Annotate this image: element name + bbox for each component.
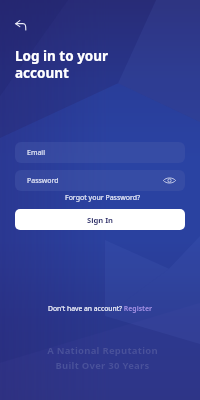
staticText: Sign In [87,215,114,225]
button[interactable]: Don't have an account? Register [44,303,157,314]
staticText: Password [27,176,59,186]
button[interactable]: Sign In [15,209,185,230]
staticText: Email [27,148,45,158]
button[interactable]: Back [15,18,27,30]
button[interactable]: Email [15,142,185,163]
button[interactable]: Password [15,170,185,191]
staticText: A National Reputation Built Over 30 Year… [47,344,158,372]
button[interactable]: Show password [163,177,176,184]
staticText: Log in to your account [15,47,109,82]
button[interactable]: Forgot your Password? [61,192,145,204]
